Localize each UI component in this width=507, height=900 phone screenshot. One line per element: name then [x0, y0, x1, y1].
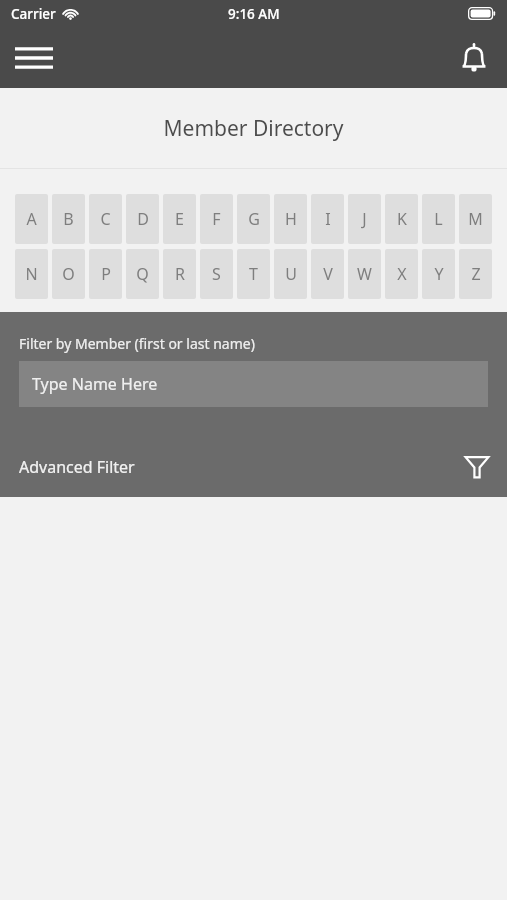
button[interactable]: H [274, 194, 307, 244]
staticText: X [397, 263, 407, 285]
staticText: M [468, 208, 483, 230]
staticText: Z [471, 263, 481, 285]
staticText: Y [434, 263, 444, 285]
staticText: U [285, 263, 297, 285]
staticText: W [357, 263, 372, 285]
button[interactable]: V [311, 249, 344, 299]
button[interactable]: X [385, 249, 418, 299]
staticText: T [249, 263, 258, 285]
button[interactable]: L [422, 194, 455, 244]
button[interactable]: B [52, 194, 85, 244]
staticText: R [175, 263, 185, 285]
button[interactable]: Type Name Here [19, 361, 488, 407]
button[interactable]: Z [459, 249, 492, 299]
button[interactable]: J [348, 194, 381, 244]
staticText: I [325, 208, 331, 230]
staticText: Carrier [11, 5, 56, 23]
staticText: O [62, 263, 75, 285]
staticText: Member Directory [163, 114, 344, 143]
button[interactable]: N [15, 249, 48, 299]
staticText: N [25, 263, 38, 285]
button[interactable]: Y [422, 249, 455, 299]
staticText: J [362, 208, 367, 230]
staticText: Type Name Here [32, 373, 158, 395]
staticText: F [212, 208, 221, 230]
staticText: Advanced Filter [19, 456, 135, 478]
button[interactable]: P [89, 249, 122, 299]
button[interactable]: W [348, 249, 381, 299]
staticText: H [285, 208, 297, 230]
staticText: 9:16 AM [228, 5, 280, 23]
button[interactable]: E [163, 194, 196, 244]
button[interactable]: O [52, 249, 85, 299]
staticText: P [101, 263, 111, 285]
staticText: G [248, 208, 260, 230]
staticText: V [323, 263, 333, 285]
button[interactable]: Q [126, 249, 159, 299]
button[interactable]: U [274, 249, 307, 299]
button[interactable]: K [385, 194, 418, 244]
staticText: E [175, 208, 184, 230]
button[interactable]: Advanced Filter [0, 441, 507, 493]
button[interactable]: I [311, 194, 344, 244]
staticText: L [434, 208, 443, 230]
staticText: Filter by Member (first or last name) [19, 334, 255, 353]
button[interactable]: F [200, 194, 233, 244]
staticText: A [26, 208, 37, 230]
staticText: D [137, 208, 149, 230]
staticText: C [100, 208, 111, 230]
button[interactable]: G [237, 194, 270, 244]
staticText: B [63, 208, 74, 230]
button[interactable]: Notifications [449, 33, 499, 83]
button[interactable]: Menu [9, 33, 59, 83]
button[interactable]: R [163, 249, 196, 299]
button[interactable]: A [15, 194, 48, 244]
staticText: K [397, 208, 407, 230]
button[interactable]: S [200, 249, 233, 299]
button[interactable]: M [459, 194, 492, 244]
button[interactable]: T [237, 249, 270, 299]
staticText: Q [136, 263, 149, 285]
staticText: S [212, 263, 221, 285]
button[interactable]: C [89, 194, 122, 244]
button[interactable]: D [126, 194, 159, 244]
